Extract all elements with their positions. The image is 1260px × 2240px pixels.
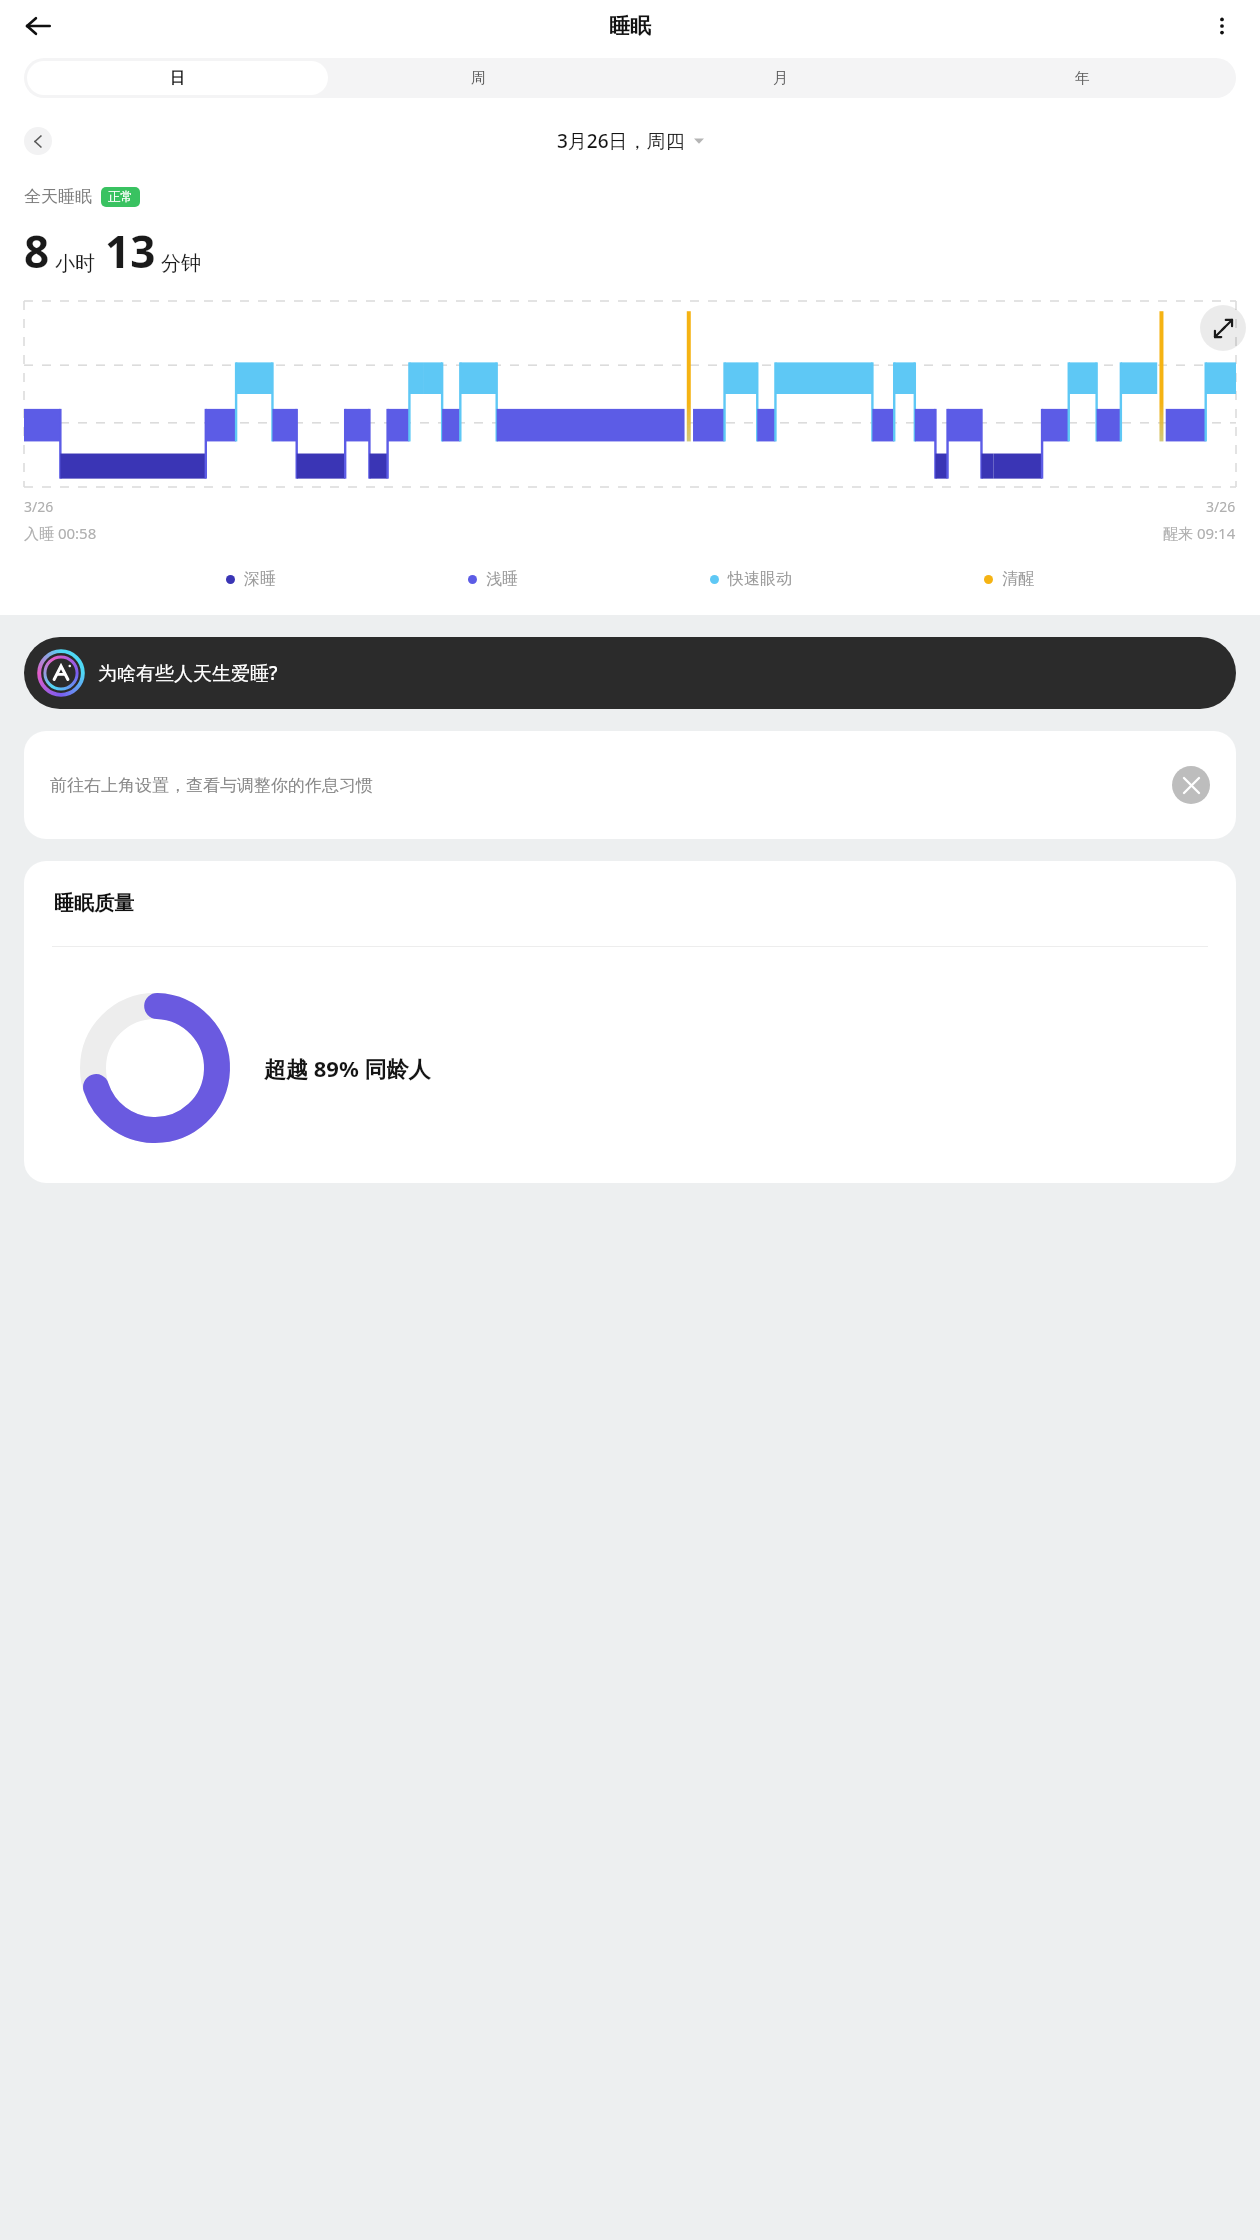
staticText: 3月26日，周四: [557, 128, 685, 154]
staticText: 睡眠质量: [54, 891, 134, 916]
button[interactable]: 快速眼动: [710, 569, 792, 589]
button[interactable]: 清醒: [984, 569, 1034, 589]
staticText: 清醒: [1002, 569, 1034, 589]
staticText: 醒来 09:14: [1163, 523, 1236, 543]
button[interactable]: 前往右上角设置，查看与调整你的作息习惯: [24, 731, 1236, 839]
button[interactable]: Previous day: [24, 127, 52, 155]
button[interactable]: 日: [27, 61, 328, 95]
staticText: 日: [170, 69, 185, 88]
button[interactable]: 深睡: [226, 569, 276, 589]
staticText: 13: [105, 221, 156, 281]
staticText: 小时: [55, 251, 95, 276]
staticText: 快速眼动: [728, 569, 792, 589]
staticText: 深睡: [244, 569, 276, 589]
staticText: 3/26: [1206, 497, 1236, 516]
staticText: 分钟: [161, 251, 201, 276]
button[interactable]: 浅睡: [468, 569, 518, 589]
staticText: 正常: [108, 189, 133, 205]
staticText: 月: [773, 69, 788, 88]
button[interactable]: 为啥有些人天生爱睡?: [24, 637, 1236, 709]
button[interactable]: Back: [14, 2, 62, 50]
staticText: 全天睡眠: [24, 186, 92, 207]
button[interactable]: Expand chart: [1200, 305, 1246, 351]
staticText: 8: [24, 221, 50, 281]
button[interactable]: 睡眠质量: [24, 861, 1236, 1183]
staticText: 超越 89% 同龄人: [264, 1053, 431, 1083]
staticText: 入睡 00:58: [24, 523, 97, 543]
staticText: 浅睡: [486, 569, 518, 589]
button[interactable]: 周: [328, 61, 629, 95]
button[interactable]: 月: [629, 61, 931, 95]
button[interactable]: 3月26日，周四: [557, 128, 704, 154]
staticText: 周: [471, 69, 486, 88]
staticText: 睡眠: [609, 13, 651, 39]
staticText: 为啥有些人天生爱睡?: [98, 660, 278, 686]
button[interactable]: Dismiss: [1172, 766, 1210, 804]
button[interactable]: 年: [931, 61, 1233, 95]
staticText: 年: [1075, 69, 1090, 88]
staticText: 3/26: [24, 497, 54, 516]
button[interactable]: More options: [1198, 2, 1246, 50]
staticText: 前往右上角设置，查看与调整你的作息习惯: [50, 775, 1162, 796]
